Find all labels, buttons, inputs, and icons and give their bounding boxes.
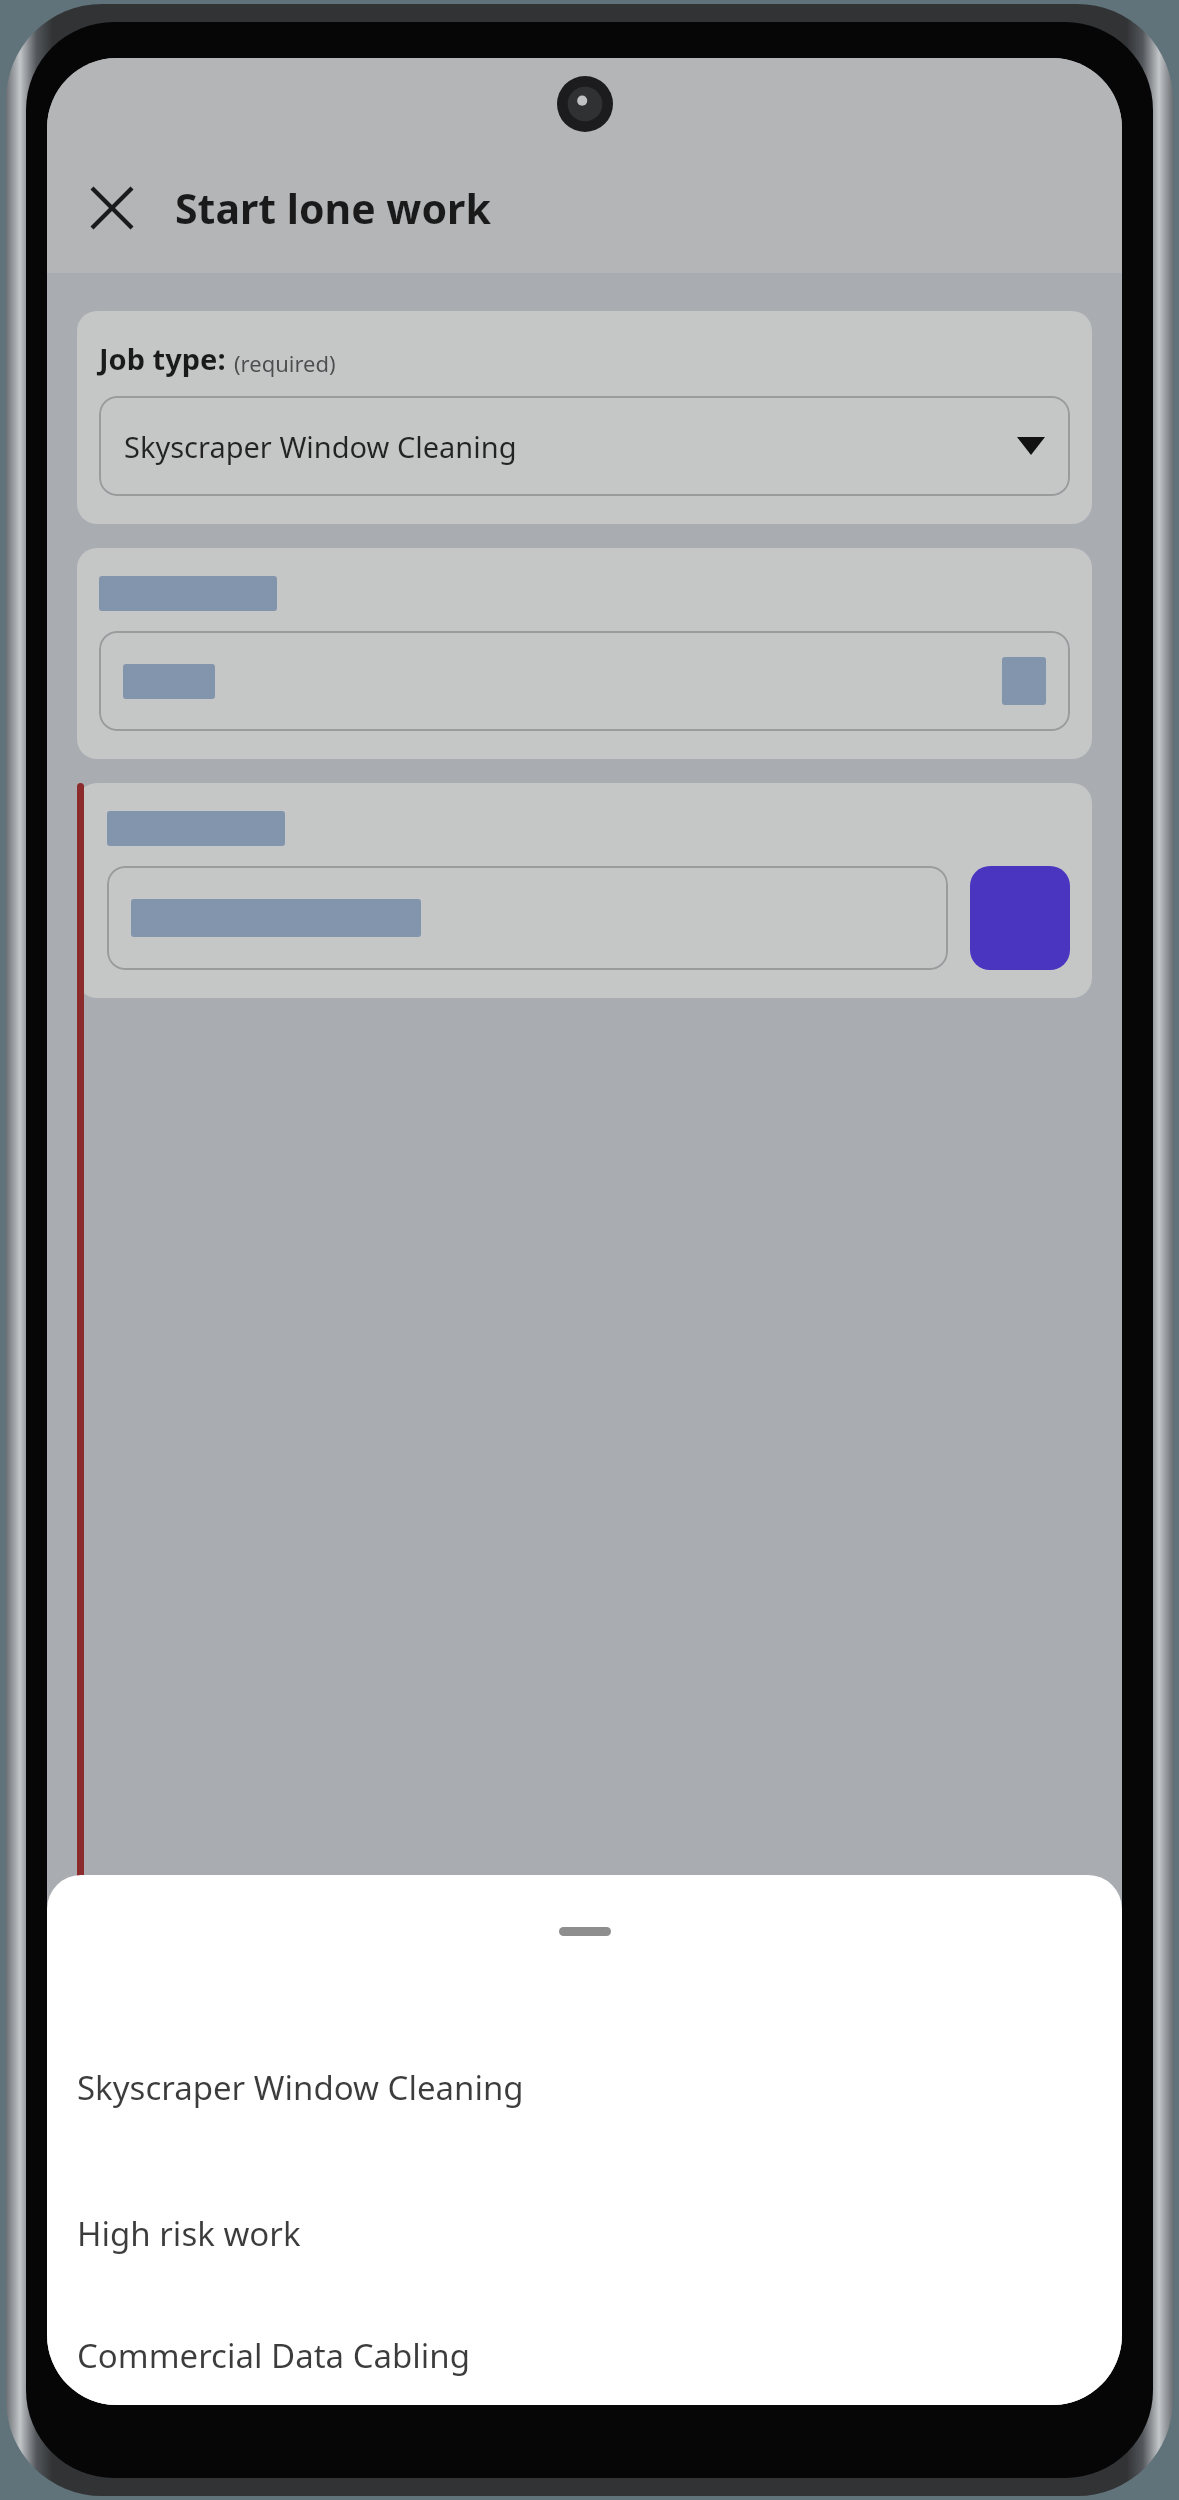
button[interactable] <box>99 2317 1070 2377</box>
staticText: (required) <box>234 348 336 378</box>
button[interactable]: Skyscraper Window Cleaning <box>99 396 1070 496</box>
button[interactable]: Add <box>970 866 1070 970</box>
button[interactable] <box>107 866 948 970</box>
button[interactable]: Commercial Data Cabling <box>47 2306 1122 2405</box>
staticText: Skyscraper Window Cleaning <box>77 2065 524 2110</box>
button[interactable]: High risk work <box>47 2160 1122 2306</box>
staticText: Skyscraper Window Cleaning <box>124 427 1017 466</box>
button[interactable]: Close <box>75 171 149 245</box>
button[interactable]: Skyscraper Window Cleaning <box>47 2014 1122 2160</box>
staticText: Job type: <box>99 339 226 378</box>
button[interactable] <box>99 631 1070 731</box>
staticText: Commercial Data Cabling <box>77 2333 471 2378</box>
staticText: Start lone work <box>175 180 491 236</box>
staticText: High risk work <box>77 2211 301 2256</box>
